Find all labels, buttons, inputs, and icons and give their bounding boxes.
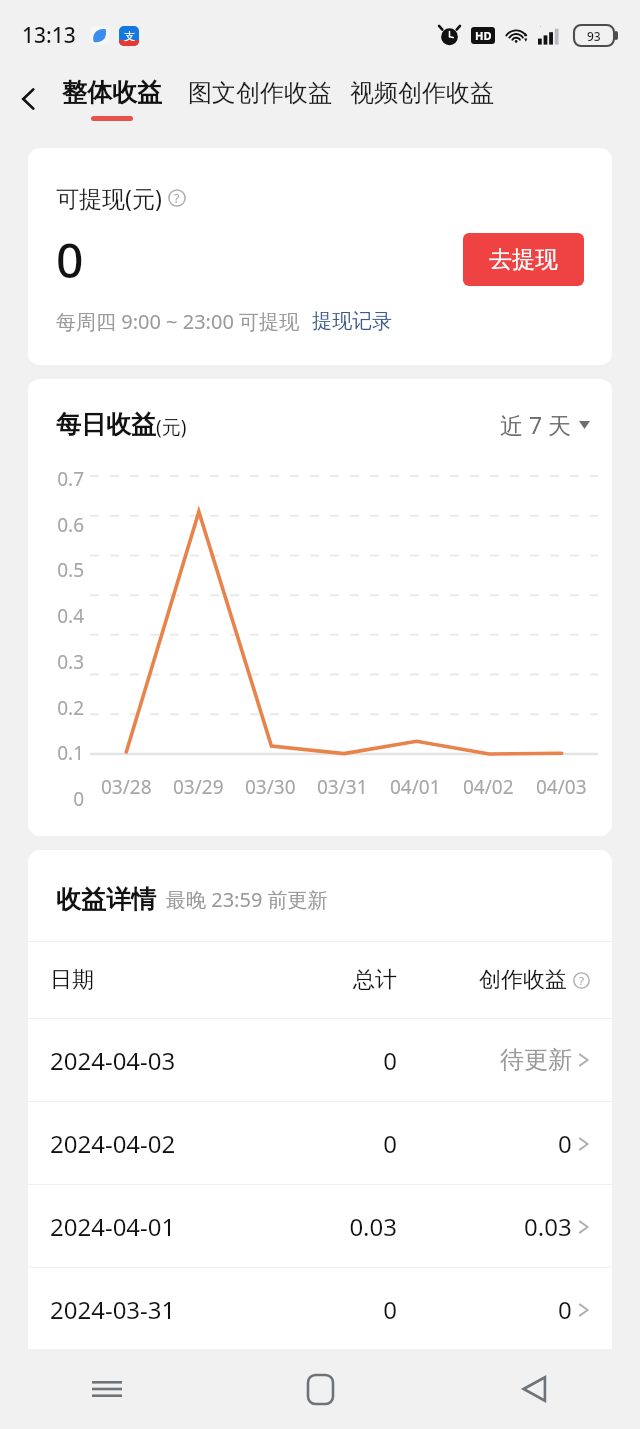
staticText: 图文创作收益 xyxy=(188,78,332,108)
staticText: 0 xyxy=(56,227,84,292)
staticText: 03/30 xyxy=(245,774,296,800)
button[interactable]: 提现记录 xyxy=(312,309,392,334)
staticText: 0.3 xyxy=(57,649,84,669)
button[interactable]: 去提现 xyxy=(463,233,584,286)
button[interactable]: Back xyxy=(427,1349,640,1429)
staticText: 0.4 xyxy=(57,603,84,623)
staticText: 去提现 xyxy=(489,245,558,274)
staticText: 0.03 xyxy=(243,1210,397,1243)
staticText: 总计 xyxy=(243,966,397,994)
staticText: 2024-04-02 xyxy=(50,1127,243,1160)
button[interactable]: 2024-04-02 xyxy=(28,1102,612,1184)
staticText: 最晚 23:59 前更新 xyxy=(166,886,328,913)
button[interactable]: 视频创作收益 xyxy=(350,78,494,121)
button[interactable]: 整体收益 xyxy=(58,77,166,121)
staticText: 支 xyxy=(124,29,135,43)
staticText: 0 xyxy=(243,1293,397,1326)
staticText: 每周四 9:00 ~ 23:00 可提现 xyxy=(56,308,300,335)
staticText: 近 7 天 xyxy=(500,409,572,440)
button[interactable]: Recent apps xyxy=(0,1349,214,1429)
staticText: 2024-04-03 xyxy=(50,1044,243,1077)
button[interactable]: 2024-03-31 xyxy=(28,1268,612,1350)
staticText: 0.5 xyxy=(57,557,84,577)
staticText: 04/03 xyxy=(536,774,587,800)
button[interactable]: Back xyxy=(0,70,58,128)
staticText: 2024-04-01 xyxy=(50,1210,243,1243)
staticText: 每日收益 xyxy=(56,409,156,440)
staticText: 收益详情 xyxy=(56,884,156,915)
staticText: 04/01 xyxy=(390,774,441,800)
staticText: 0 xyxy=(243,1127,397,1160)
button[interactable]: 2024-04-01 xyxy=(28,1185,612,1267)
staticText: 日期 xyxy=(50,966,243,994)
staticText: 04/02 xyxy=(463,774,514,800)
staticText: 0 xyxy=(558,1127,572,1160)
staticText: 创作收益 xyxy=(479,966,567,994)
staticText: (元) xyxy=(156,414,187,440)
button[interactable]: Home xyxy=(214,1349,427,1429)
staticText: 提现记录 xyxy=(312,309,392,334)
staticText: 可提现(元) xyxy=(56,182,162,213)
staticText: 03/31 xyxy=(317,774,368,800)
staticText: 0.03 xyxy=(524,1210,572,1243)
staticText: 93 xyxy=(587,28,601,44)
button[interactable]: 图文创作收益 xyxy=(188,78,332,121)
staticText: 视频创作收益 xyxy=(350,78,494,108)
staticText: 待更新 xyxy=(500,1045,572,1075)
staticText: 0 xyxy=(73,786,84,806)
staticText: 03/29 xyxy=(173,774,224,800)
button[interactable]: 近 7 天 xyxy=(500,409,590,440)
staticText: 03/28 xyxy=(101,774,152,800)
staticText: HD xyxy=(475,28,492,43)
staticText: 13:13 xyxy=(22,21,76,50)
staticText: 0.2 xyxy=(57,695,84,715)
staticText: 0.7 xyxy=(57,466,84,486)
staticText: 0.6 xyxy=(57,512,84,532)
staticText: 0 xyxy=(558,1293,572,1326)
staticText: 2024-03-31 xyxy=(50,1293,243,1326)
staticText: ? xyxy=(174,190,180,207)
staticText: ? xyxy=(579,973,585,989)
staticText: 整体收益 xyxy=(62,77,162,108)
staticText: 0 xyxy=(243,1044,397,1077)
staticText: 0.1 xyxy=(57,740,84,760)
button[interactable]: 2024-04-03 xyxy=(28,1019,612,1101)
